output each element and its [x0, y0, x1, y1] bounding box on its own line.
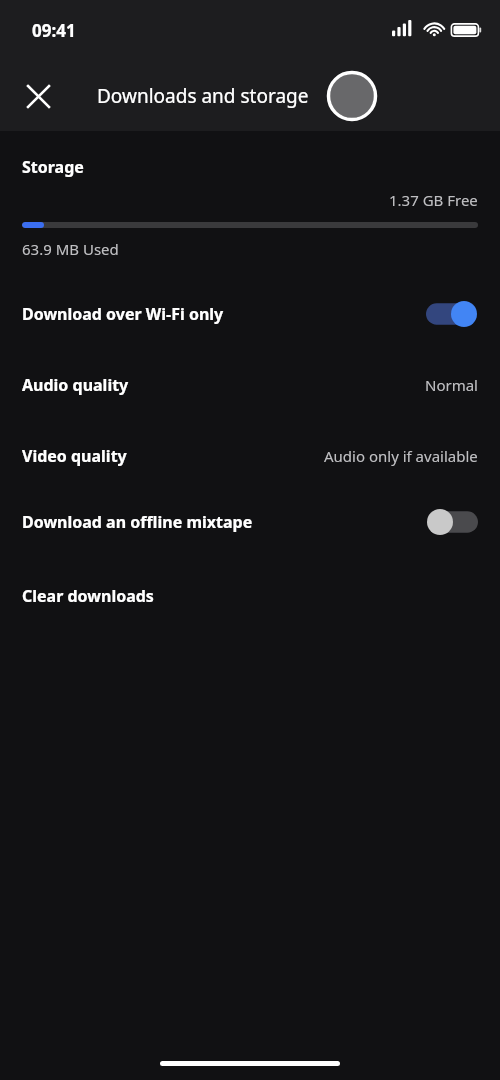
- staticText: 09:41: [32, 19, 76, 42]
- staticText: Video quality: [22, 445, 127, 467]
- button[interactable]: Toggle on: [426, 301, 478, 327]
- button[interactable]: Audio quality: [0, 370, 500, 400]
- staticText: Audio quality: [22, 374, 129, 396]
- button[interactable]: Download over Wi-Fi only: [0, 299, 500, 329]
- staticText: Clear downloads: [22, 585, 154, 607]
- staticText: Download an offline mixtape: [22, 511, 253, 533]
- button[interactable]: Clear downloads: [0, 581, 500, 611]
- staticText: Download over Wi-Fi only: [22, 303, 224, 325]
- button[interactable]: Close: [14, 72, 62, 120]
- staticText: 63.9 MB Used: [22, 239, 119, 259]
- button[interactable]: Download an offline mixtape: [0, 507, 500, 537]
- staticText: Downloads and storage: [97, 83, 309, 109]
- button[interactable]: Toggle off: [426, 509, 478, 535]
- staticText: Audio only if available: [324, 446, 478, 466]
- button[interactable]: Video quality: [0, 441, 500, 471]
- staticText: Normal: [425, 375, 478, 395]
- staticText: Storage: [22, 156, 84, 178]
- staticText: 1.37 GB Free: [389, 190, 478, 210]
